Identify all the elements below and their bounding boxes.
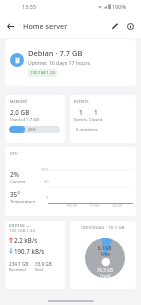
staticText: 192.168.1.24 (9, 228, 36, 233)
staticText: 2% (10, 170, 19, 179)
staticText: EVENTS (74, 99, 89, 104)
staticText: 22:50 (112, 203, 123, 208)
staticText: 190.7 kB/s (14, 247, 45, 255)
staticText: 0 (46, 195, 49, 200)
staticText: Used of 7.7 GB (10, 117, 39, 123)
button[interactable]: Info (123, 19, 137, 33)
staticText: 1 (79, 108, 83, 117)
staticText: 5 monitors (76, 127, 98, 133)
staticText: 1 (94, 108, 98, 117)
staticText: MEMORY (10, 99, 28, 104)
staticText: 00:50 (67, 203, 78, 208)
button[interactable]: /DEV/SDA4 · 76.7 GB (70, 221, 136, 289)
staticText: Received (9, 267, 26, 272)
button[interactable]: Edit (108, 19, 122, 33)
staticText: 192.168.1.24 (30, 70, 55, 76)
staticText: Sent (35, 267, 44, 272)
button[interactable]: ENP4S0 — (5, 221, 65, 289)
staticText: 15:55 (22, 3, 37, 10)
staticText: Current (10, 179, 26, 185)
staticText: 100% (112, 3, 127, 10)
staticText: Temperature (10, 199, 36, 205)
button[interactable]: Back (0, 16, 20, 36)
button[interactable]: EVENTS (70, 95, 136, 143)
staticText: 33.9 GB (35, 261, 52, 267)
staticText: 50 (44, 179, 49, 184)
button[interactable]: CPU (5, 147, 136, 216)
button[interactable]: Debian · 7.7 GB (5, 39, 136, 86)
staticText: ENP4S0 — (9, 223, 30, 228)
staticText: Closed (89, 117, 103, 123)
staticText: 100 (41, 167, 48, 172)
staticText: Debian · 7.7 GB (28, 48, 83, 58)
staticText: 234.7 GB (9, 261, 29, 267)
staticText: 2.2 kB/s (14, 236, 38, 244)
staticText: Uptime: 16 days 17 hours (28, 59, 91, 66)
staticText: Free (101, 251, 110, 257)
staticText: Events (74, 117, 87, 123)
staticText: Home server (23, 21, 68, 31)
staticText: Used (100, 273, 111, 279)
staticText: 6.1 GB (98, 245, 112, 251)
staticText: 26% (28, 127, 36, 132)
staticText: CPU (10, 151, 18, 156)
staticText: 35° (10, 190, 20, 199)
staticText: /DEV/SDA4 · 76.7 GB (81, 225, 125, 231)
button[interactable]: MEMORY (5, 95, 65, 143)
staticText: 11:50 (89, 203, 100, 208)
staticText: 70.3 GB (97, 267, 113, 273)
staticText: 2.0 GB (10, 108, 30, 117)
